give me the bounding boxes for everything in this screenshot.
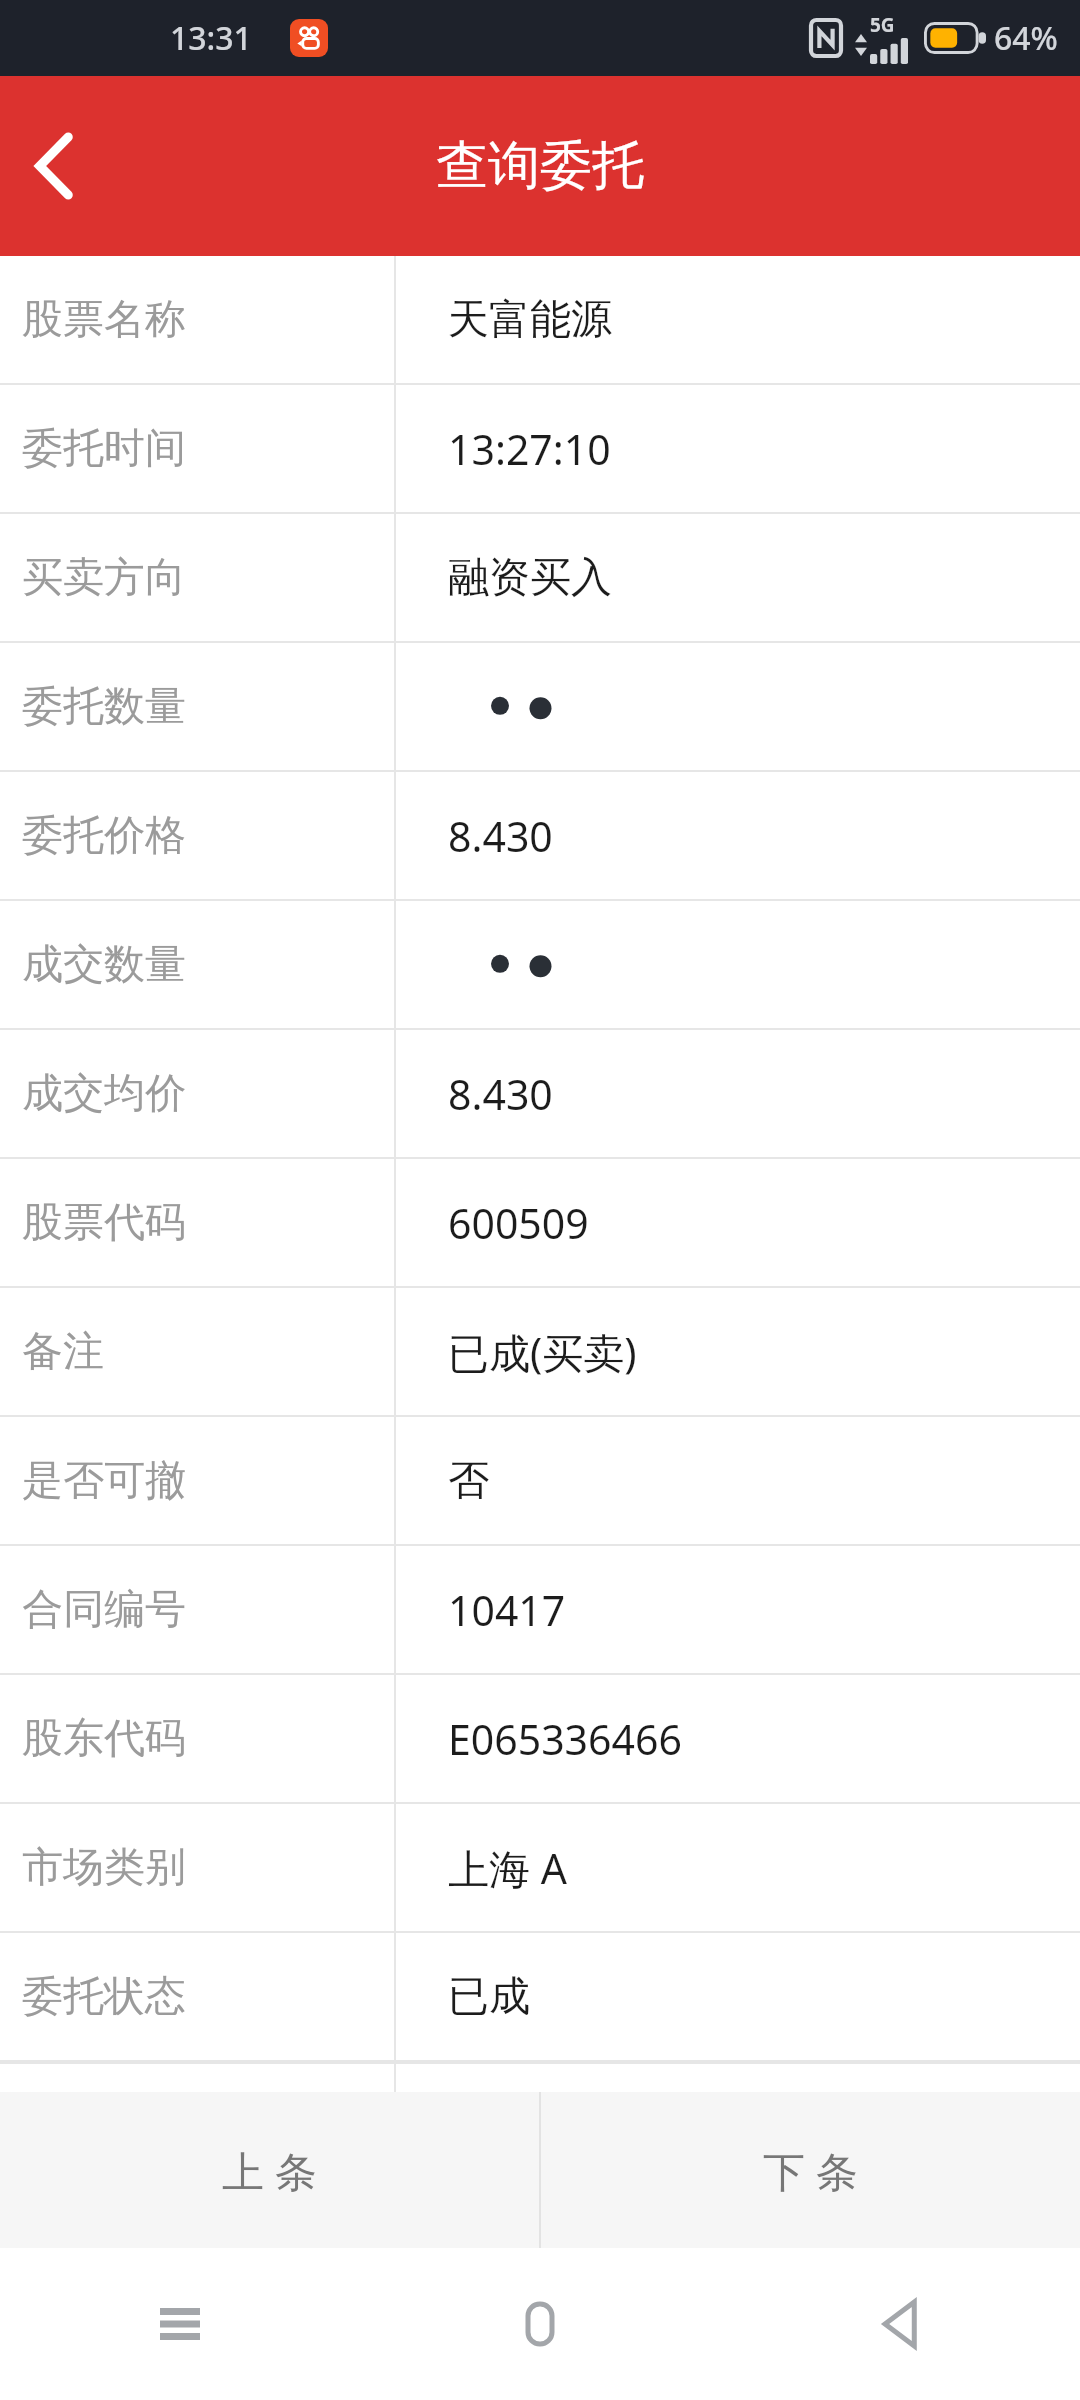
- staticText: 8.430: [448, 1066, 553, 1122]
- staticText: 13:31: [170, 16, 252, 60]
- button[interactable]: 股东代码: [0, 1675, 1080, 1804]
- staticText: 600509: [448, 1195, 589, 1251]
- button[interactable]: Back: [0, 112, 108, 220]
- button[interactable]: 股票名称: [0, 256, 1080, 385]
- button[interactable]: 成交数量: [0, 901, 1080, 1030]
- staticText: 股东代码: [22, 1713, 186, 1765]
- staticText: 买卖方向: [22, 552, 186, 604]
- staticText: 64%: [994, 16, 1058, 60]
- staticText: E065336466: [448, 1711, 682, 1767]
- staticText: 已成: [448, 1971, 530, 2023]
- button[interactable]: 下 条: [541, 2092, 1080, 2248]
- button[interactable]: 市场类别: [0, 1804, 1080, 1933]
- staticText: 查询委托: [436, 133, 644, 199]
- staticText: 已成(买卖): [448, 1324, 637, 1380]
- button[interactable]: Recents: [0, 2248, 360, 2400]
- staticText: 上 条: [222, 2142, 317, 2199]
- button[interactable]: 上 条: [0, 2092, 539, 2248]
- staticText: 委托数量: [22, 681, 186, 733]
- button[interactable]: 成交均价: [0, 1030, 1080, 1159]
- staticText: 是否可撤: [22, 1455, 186, 1507]
- button[interactable]: 是否可撤: [0, 1417, 1080, 1546]
- button[interactable]: 股票代码: [0, 1159, 1080, 1288]
- button[interactable]: 委托时间: [0, 385, 1080, 514]
- staticText: 否: [448, 1455, 489, 1507]
- button[interactable]: 合同编号: [0, 1546, 1080, 1675]
- staticText: 融资买入: [448, 552, 612, 604]
- staticText: 成交数量: [22, 939, 186, 991]
- staticText: 13:27:10: [448, 421, 611, 477]
- button[interactable]: 委托价格: [0, 772, 1080, 901]
- staticText: 上海 A: [448, 1840, 567, 1896]
- staticText: 下 条: [763, 2142, 858, 2199]
- staticText: 委托价格: [22, 810, 186, 862]
- staticText: 成交均价: [22, 1068, 186, 1120]
- staticText: 8.430: [448, 808, 553, 864]
- button[interactable]: 买卖方向: [0, 514, 1080, 643]
- button[interactable]: 委托数量: [0, 643, 1080, 772]
- button[interactable]: Home: [360, 2248, 720, 2400]
- button[interactable]: Back: [720, 2248, 1080, 2400]
- staticText: 10417: [448, 1582, 566, 1638]
- staticText: 天富能源: [448, 294, 612, 346]
- staticText: 合同编号: [22, 1584, 186, 1636]
- staticText: 委托时间: [22, 423, 186, 475]
- staticText: 市场类别: [22, 1842, 186, 1894]
- button[interactable]: 备注: [0, 1288, 1080, 1417]
- staticText: 股票名称: [22, 294, 186, 346]
- staticText: 5G: [870, 12, 895, 38]
- button[interactable]: 委托状态: [0, 1933, 1080, 2062]
- staticText: 股票代码: [22, 1197, 186, 1249]
- staticText: 备注: [22, 1326, 104, 1378]
- staticText: 委托状态: [22, 1971, 186, 2023]
